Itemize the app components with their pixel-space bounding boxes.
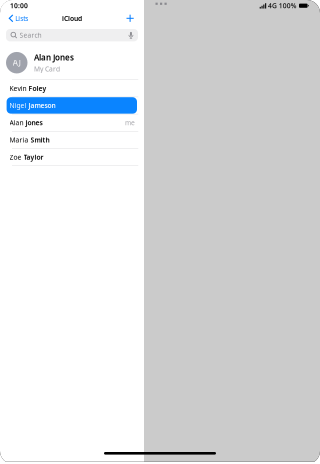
staticText: Jameson	[29, 101, 56, 110]
staticText: me	[125, 118, 135, 127]
button[interactable]: New contact	[120, 12, 144, 25]
button[interactable]: Nigel	[0, 97, 144, 114]
staticText: Foley	[29, 84, 47, 93]
staticText: My Card	[34, 64, 60, 73]
staticText: Nigel	[10, 101, 29, 110]
staticText: Lists	[15, 14, 28, 23]
staticText: 100%	[279, 1, 297, 10]
staticText: 10:00	[10, 1, 28, 10]
staticText: Search	[19, 31, 41, 40]
button[interactable]: Multitasking controls	[155, 3, 167, 5]
staticText: Taylor	[24, 153, 44, 162]
staticText: Alan	[10, 118, 26, 127]
staticText: Kevin	[10, 84, 29, 93]
staticText: AJ	[13, 57, 21, 68]
staticText: Alan Jones	[34, 52, 74, 63]
button[interactable]: Zoe	[0, 149, 144, 165]
button[interactable]: Alan	[0, 114, 144, 131]
button[interactable]: Search	[6, 29, 138, 41]
staticText: Maria	[10, 135, 31, 144]
button[interactable]: Maria	[0, 132, 144, 148]
staticText: Jones	[26, 118, 43, 127]
staticText: iCloud	[62, 14, 82, 23]
staticText: 4G	[268, 1, 277, 10]
staticText: Zoe	[10, 153, 24, 162]
staticText: Smith	[31, 135, 50, 144]
button[interactable]: Kevin	[0, 80, 144, 97]
button[interactable]: Lists	[0, 11, 34, 26]
button[interactable]: AJ	[0, 46, 144, 79]
